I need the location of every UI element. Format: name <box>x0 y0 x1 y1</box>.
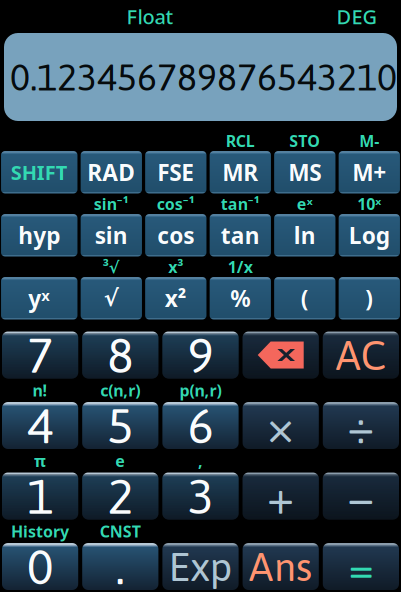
staticText: 4 <box>27 397 53 454</box>
button[interactable]: 6 <box>162 402 239 449</box>
staticText: n! <box>33 380 48 401</box>
button[interactable]: = <box>323 543 399 590</box>
button[interactable]: yˣ <box>1 277 77 319</box>
staticText: ln <box>294 220 316 250</box>
button[interactable]: cos <box>145 214 206 256</box>
button[interactable]: ( <box>274 277 335 319</box>
staticText: History <box>11 521 69 542</box>
button[interactable]: MR <box>210 151 271 193</box>
staticText: e <box>115 450 125 471</box>
staticText: x³ <box>168 256 183 277</box>
staticText: 2 <box>107 468 133 524</box>
button[interactable]: tan <box>210 214 271 256</box>
staticText: 3 <box>187 468 213 524</box>
staticText: tan <box>221 220 260 250</box>
staticText: RCL <box>226 130 255 151</box>
button[interactable]: ) <box>339 277 400 319</box>
button[interactable]: sin <box>81 214 142 256</box>
button[interactable]: 7 <box>2 331 78 378</box>
button[interactable]: RAD <box>81 151 142 193</box>
staticText: cos <box>157 220 194 250</box>
button[interactable]: M+ <box>339 151 400 193</box>
staticText: 6 <box>187 397 213 454</box>
button[interactable]: 8 <box>82 331 158 378</box>
staticText: 0 <box>27 538 53 592</box>
staticText <box>367 256 371 277</box>
staticText: 9 <box>187 327 213 383</box>
button[interactable]: Log <box>339 214 400 256</box>
button[interactable]: − <box>323 472 399 519</box>
button[interactable]: Ans <box>243 543 319 590</box>
button[interactable]: 1 <box>2 472 78 519</box>
staticText: RAD <box>87 157 135 187</box>
staticText: = <box>348 540 373 592</box>
staticText: M- <box>359 130 379 151</box>
staticText: cos⁻¹ <box>157 193 195 214</box>
staticText: − <box>347 468 375 524</box>
staticText: % <box>230 283 250 313</box>
staticText: FSE <box>157 157 194 187</box>
staticText: 0.123456789876543210 <box>10 56 397 98</box>
button[interactable]: × <box>243 402 319 449</box>
button[interactable]: 5 <box>82 402 158 449</box>
button[interactable]: 0 <box>2 543 78 590</box>
button[interactable]: hyp <box>1 214 77 256</box>
staticText: π <box>34 450 46 471</box>
staticText: Ans <box>249 544 313 589</box>
staticText: tan⁻¹ <box>221 193 260 214</box>
staticText: eˣ <box>297 193 313 214</box>
staticText: sin <box>95 220 128 250</box>
staticText <box>37 256 41 277</box>
staticText: 10ˣ <box>357 193 381 214</box>
button[interactable]: AC <box>323 331 399 378</box>
button[interactable]: x² <box>145 277 206 319</box>
button[interactable]: 9 <box>162 331 239 378</box>
staticText: Log <box>349 220 390 250</box>
staticText: ) <box>365 283 373 313</box>
staticText: . <box>115 538 125 592</box>
staticText: sin⁻¹ <box>94 193 129 214</box>
staticText: ( <box>301 283 309 313</box>
staticText: CNST <box>100 521 141 542</box>
button[interactable]: 4 <box>2 402 78 449</box>
button[interactable]: √ <box>81 277 142 319</box>
staticText: yˣ <box>28 283 50 313</box>
button[interactable]: Exp <box>162 543 239 590</box>
staticText: × <box>267 397 295 454</box>
staticText: Float <box>126 3 173 30</box>
staticText: MR <box>222 157 258 187</box>
staticText: Exp <box>168 544 232 589</box>
staticText: hyp <box>18 220 60 250</box>
button[interactable]: Backspace <box>243 331 319 378</box>
staticText <box>303 256 307 277</box>
button[interactable]: ÷ <box>323 402 399 449</box>
staticText: DEG <box>336 3 377 30</box>
button[interactable]: 2 <box>82 472 158 519</box>
button[interactable]: FSE <box>145 151 206 193</box>
button[interactable]: SHIFT <box>1 151 77 193</box>
staticText: AC <box>335 331 386 379</box>
staticText: p(n,r) <box>179 380 221 401</box>
staticText: 5 <box>107 397 133 454</box>
staticText: 8 <box>107 327 133 383</box>
button[interactable]: ln <box>274 214 335 256</box>
staticText: MS <box>288 157 321 187</box>
button[interactable]: 3 <box>162 472 239 519</box>
button[interactable]: + <box>243 472 319 519</box>
button[interactable]: . <box>82 543 158 590</box>
staticText: + <box>267 468 295 524</box>
staticText: M+ <box>352 157 386 187</box>
staticText: √ <box>104 285 119 311</box>
staticText: ÷ <box>347 397 375 454</box>
button[interactable]: % <box>210 277 271 319</box>
button[interactable]: MS <box>274 151 335 193</box>
staticText: , <box>198 450 203 471</box>
